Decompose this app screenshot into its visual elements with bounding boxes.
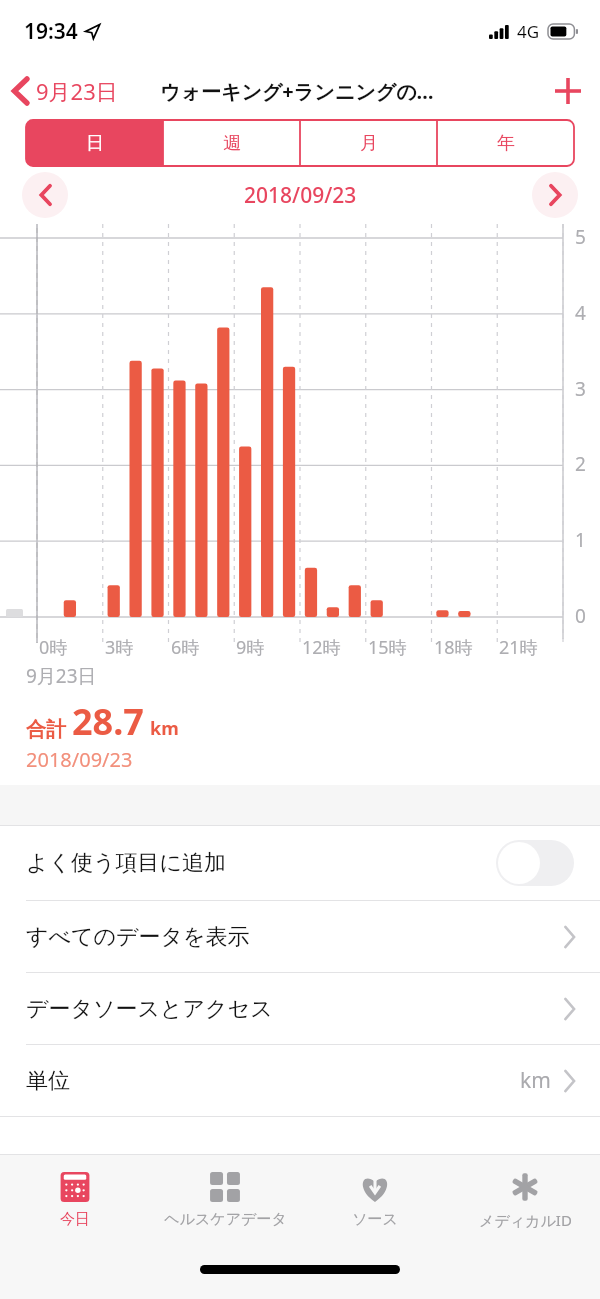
staticText: 15時 [368,635,407,660]
staticText: すべてのデータを表示 [26,923,250,951]
button[interactable]: ヘルスケアデータ [150,1155,300,1253]
button[interactable]: Next day [532,172,578,218]
button[interactable]: 単位 [0,1045,600,1116]
staticText: 単位 [26,1067,70,1095]
staticText: 1 [575,527,586,553]
staticText: km [520,1066,551,1095]
staticText: km [150,716,179,741]
staticText: 9月23日 [26,663,97,689]
staticText: 6時 [171,635,200,660]
staticText: 週 [223,132,241,155]
button[interactable]: 今日 [0,1155,150,1253]
button[interactable]: 週 [163,120,300,166]
button[interactable]: すべてのデータを表示 [0,901,600,972]
button[interactable]: データソースとアクセス [0,973,600,1044]
staticText: 12時 [302,635,341,660]
staticText: 9月23日 [36,76,118,106]
staticText: ヘルスケアデータ [164,1210,287,1229]
staticText: 年 [497,132,515,155]
button[interactable]: 月 [300,120,437,166]
staticText: 21時 [499,635,538,660]
button[interactable]: Add data [536,67,600,115]
button[interactable]: Previous day [22,172,68,218]
button[interactable]: 日 [26,120,163,166]
button[interactable]: 9月23日 [0,68,126,114]
staticText: メディカルID [479,1210,572,1230]
staticText: 4 [575,300,586,326]
staticText: 日 [86,132,104,155]
staticText: 19:34 [24,17,78,46]
staticText: 3 [575,376,586,402]
staticText: 0 [575,603,586,629]
button[interactable]: 年 [437,120,574,166]
staticText: よく使う項目に追加 [26,849,227,877]
staticText: データソースとアクセス [26,995,273,1023]
staticText: 2018/09/23 [244,181,357,210]
button[interactable]: よく使う項目に追加 [0,826,600,900]
staticText: 今日 [60,1210,90,1229]
staticText: ソース [352,1210,398,1229]
button[interactable]: ソース [300,1155,450,1253]
staticText: 0時 [39,635,68,660]
staticText: 9時 [236,635,265,660]
staticText: 3時 [105,635,134,660]
button[interactable]: メディカルID [450,1155,600,1253]
staticText: 合計 [26,717,66,742]
staticText: 5 [575,224,586,250]
staticText: 2018/09/23 [26,746,133,773]
staticText: 4G [517,20,540,43]
staticText: 月 [360,132,378,155]
staticText: 2 [575,451,586,477]
staticText: ウォーキング+ランニングの… [160,78,434,105]
staticText: 18時 [434,635,473,660]
staticText: 28.7 [72,697,144,746]
